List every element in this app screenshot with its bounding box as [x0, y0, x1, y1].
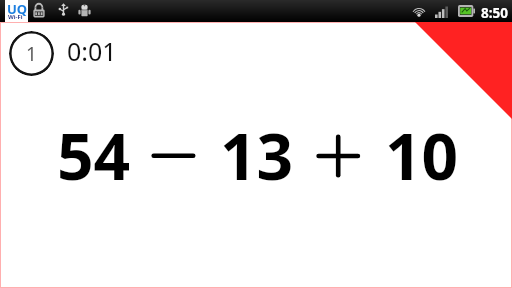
button[interactable]: Question 1 — [9, 31, 54, 76]
staticText: 0:01 — [67, 34, 117, 68]
button[interactable]: 0:01 — [65, 31, 115, 76]
staticText: 54 — [57, 112, 131, 199]
staticText: 8:50 — [481, 4, 508, 22]
staticText: UQ — [7, 0, 28, 18]
staticText: 10 — [385, 112, 459, 199]
staticText: 13 — [220, 112, 294, 199]
staticText: Wi-Fi — [8, 13, 23, 21]
button[interactable]: 54 minus 13 plus 10 — [0, 125, 512, 191]
staticText: 1 — [26, 41, 37, 67]
